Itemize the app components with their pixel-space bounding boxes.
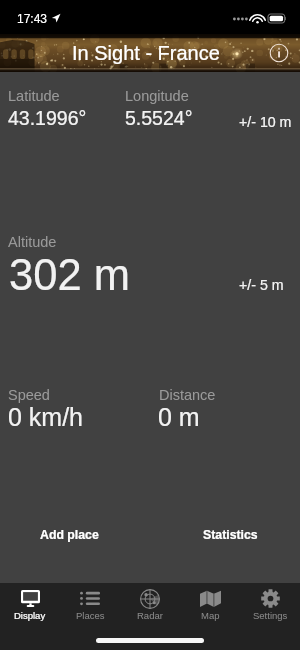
- button[interactable]: Map: [180, 583, 240, 650]
- staticText: 43.1996°: [8, 107, 87, 129]
- button[interactable]: Radar: [120, 583, 180, 650]
- staticText: Latitude: [8, 88, 60, 104]
- staticText: Longitude: [125, 88, 189, 104]
- staticText: 5.5524°: [125, 107, 193, 129]
- staticText: 17:43: [17, 12, 48, 25]
- staticText: 0 km/h: [8, 403, 84, 431]
- staticText: 302 m: [9, 251, 130, 300]
- staticText: +/- 5 m: [239, 277, 284, 293]
- button[interactable]: Places: [60, 583, 120, 650]
- button[interactable]: Statistics: [184, 518, 277, 552]
- button[interactable]: Display: [0, 583, 60, 650]
- staticText: In Sight - France: [72, 42, 220, 64]
- button[interactable]: Settings: [240, 583, 300, 650]
- staticText: Distance: [159, 387, 216, 403]
- button[interactable]: Add place: [20, 518, 118, 552]
- staticText: +/- 10 m: [239, 114, 292, 130]
- staticText: Map: [201, 610, 220, 621]
- staticText: Places: [76, 610, 105, 621]
- staticText: Altitude: [8, 234, 57, 250]
- button[interactable]: Info: [268, 42, 290, 64]
- staticText: Settings: [253, 610, 288, 621]
- staticText: Display: [14, 610, 46, 621]
- staticText: Speed: [8, 387, 50, 403]
- staticText: Statistics: [203, 528, 258, 542]
- staticText: Radar: [137, 610, 163, 621]
- staticText: 0 m: [158, 403, 200, 431]
- staticText: Add place: [40, 528, 99, 542]
